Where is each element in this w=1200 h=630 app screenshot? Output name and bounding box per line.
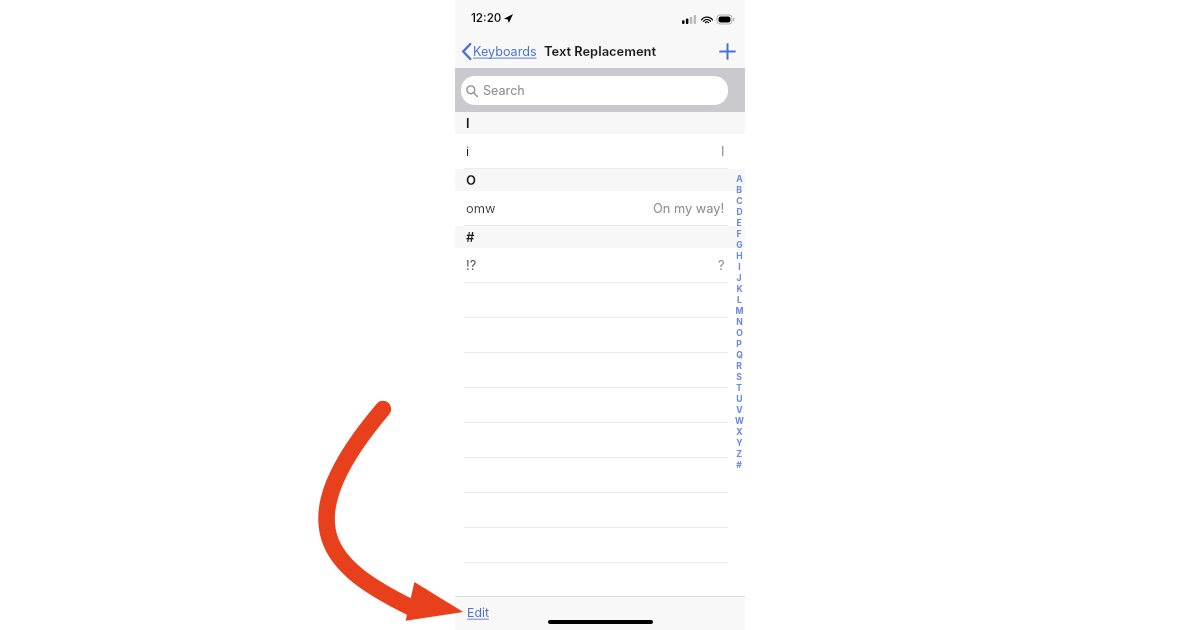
button[interactable]: Search — [461, 76, 728, 105]
staticText: I — [466, 115, 470, 131]
staticText: U — [736, 394, 743, 404]
staticText: F — [736, 229, 742, 239]
staticText: Text Replacement — [544, 44, 657, 59]
button[interactable]: Edit — [455, 603, 489, 622]
staticText: C — [736, 196, 743, 206]
staticText: S — [736, 372, 742, 382]
staticText: # — [466, 229, 475, 245]
staticText: N — [736, 317, 743, 327]
staticText: O — [466, 172, 477, 188]
staticText: M — [735, 306, 744, 316]
staticText: Z — [736, 449, 742, 459]
staticText: 12:20 — [471, 11, 502, 25]
staticText: I — [721, 144, 725, 159]
staticText: Y — [736, 438, 743, 448]
button[interactable]: i — [455, 134, 745, 169]
staticText: O — [736, 328, 743, 338]
button[interactable]: omw — [455, 191, 745, 226]
staticText: P — [736, 339, 742, 349]
staticText: Q — [736, 350, 743, 360]
staticText: G — [736, 240, 743, 250]
staticText: K — [736, 284, 743, 294]
staticText: A — [736, 174, 743, 184]
staticText: B — [736, 185, 742, 195]
staticText: ? — [718, 258, 725, 273]
button[interactable]: Add — [719, 43, 745, 60]
button[interactable]: Keyboards — [455, 40, 541, 63]
staticText: R — [736, 361, 742, 371]
staticText: I — [738, 262, 741, 272]
staticText: D — [736, 207, 743, 217]
staticText: Search — [483, 83, 525, 98]
staticText: i — [466, 144, 470, 159]
staticText: L — [737, 295, 742, 305]
staticText: X — [736, 427, 743, 437]
staticText: V — [736, 405, 743, 415]
staticText: J — [736, 273, 742, 283]
staticText: On my way! — [653, 201, 725, 216]
staticText: W — [735, 416, 744, 426]
staticText: H — [736, 251, 743, 261]
staticText: Keyboards — [473, 44, 537, 59]
staticText: T — [736, 383, 742, 393]
staticText: omw — [466, 201, 496, 216]
staticText: # — [736, 460, 742, 470]
staticText: E — [736, 218, 742, 228]
staticText: !? — [466, 258, 477, 273]
button[interactable]: !? — [455, 248, 745, 283]
